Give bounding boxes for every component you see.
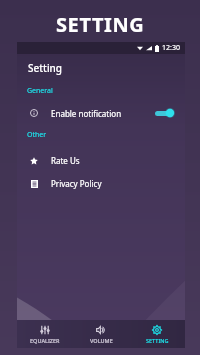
staticText: Other (27, 130, 47, 140)
button[interactable]: Enable notification (155, 107, 175, 119)
button[interactable]: Rate Us (17, 149, 185, 172)
staticText: SETTING (56, 11, 145, 38)
staticText: General (27, 86, 53, 96)
staticText: Enable notification (51, 108, 122, 119)
staticText: Privacy Policy (51, 178, 102, 189)
staticText: SETTING (146, 337, 169, 344)
button[interactable]: SETTING (129, 320, 185, 348)
staticText: EQUALIZER (30, 337, 60, 344)
button[interactable]: Enable notification (17, 101, 185, 125)
staticText: VOLUME (90, 337, 113, 344)
button[interactable]: EQUALIZER (17, 320, 73, 348)
staticText: 12:30 (162, 43, 180, 53)
staticText: Setting (28, 61, 63, 75)
button[interactable]: Privacy Policy (17, 172, 185, 195)
staticText: Rate Us (51, 155, 80, 166)
button[interactable]: VOLUME (73, 320, 129, 348)
